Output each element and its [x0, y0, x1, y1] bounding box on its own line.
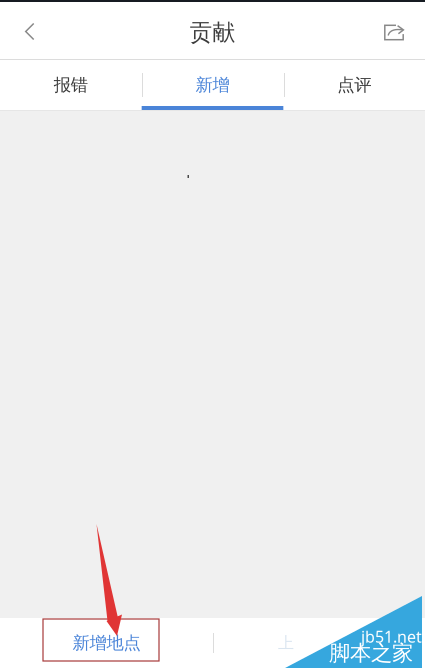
button[interactable]: 新增地点: [0, 618, 213, 668]
staticText: 上: [278, 633, 294, 653]
button[interactable]: Share: [363, 7, 425, 53]
staticText: jb51.net: [361, 626, 422, 647]
staticText: 脚本之家: [329, 640, 413, 666]
button[interactable]: 点评: [283, 60, 425, 110]
staticText: 点评: [337, 74, 371, 96]
button[interactable]: 报错: [0, 60, 142, 110]
button[interactable]: 上: [214, 618, 425, 668]
staticText: 新增地点: [72, 632, 140, 654]
staticText: 新增: [195, 74, 229, 96]
staticText: 贡献: [189, 19, 235, 46]
button[interactable]: Back: [0, 7, 60, 53]
button[interactable]: 新增: [142, 60, 283, 110]
staticText: 报错: [54, 74, 88, 96]
